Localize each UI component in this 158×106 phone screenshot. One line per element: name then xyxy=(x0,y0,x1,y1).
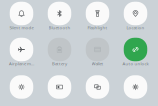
staticText: Auto unlock xyxy=(122,61,148,67)
button[interactable]: Wallet xyxy=(86,38,109,61)
button[interactable]: Control xyxy=(10,75,33,99)
button[interactable]: Control xyxy=(48,75,71,99)
button[interactable]: Flashlight xyxy=(86,2,109,25)
button[interactable]: Location xyxy=(124,2,147,25)
button[interactable]: Silent mode xyxy=(10,2,33,25)
staticText: Silent mode xyxy=(9,25,33,31)
staticText: Airplane m… xyxy=(9,61,34,67)
staticText: Location xyxy=(126,25,144,31)
staticText: Flashlight xyxy=(87,25,107,31)
button[interactable]: Auto unlock xyxy=(124,38,147,61)
button[interactable]: Bluetooth xyxy=(48,2,71,25)
button[interactable]: Control xyxy=(86,75,109,99)
button[interactable]: Battery xyxy=(48,38,71,61)
staticText: Battery xyxy=(52,61,67,67)
button[interactable]: Control xyxy=(124,75,147,99)
staticText: Bluetooth xyxy=(48,25,70,31)
button[interactable]: Airplane m… xyxy=(10,38,33,61)
staticText: Wallet xyxy=(91,61,103,67)
